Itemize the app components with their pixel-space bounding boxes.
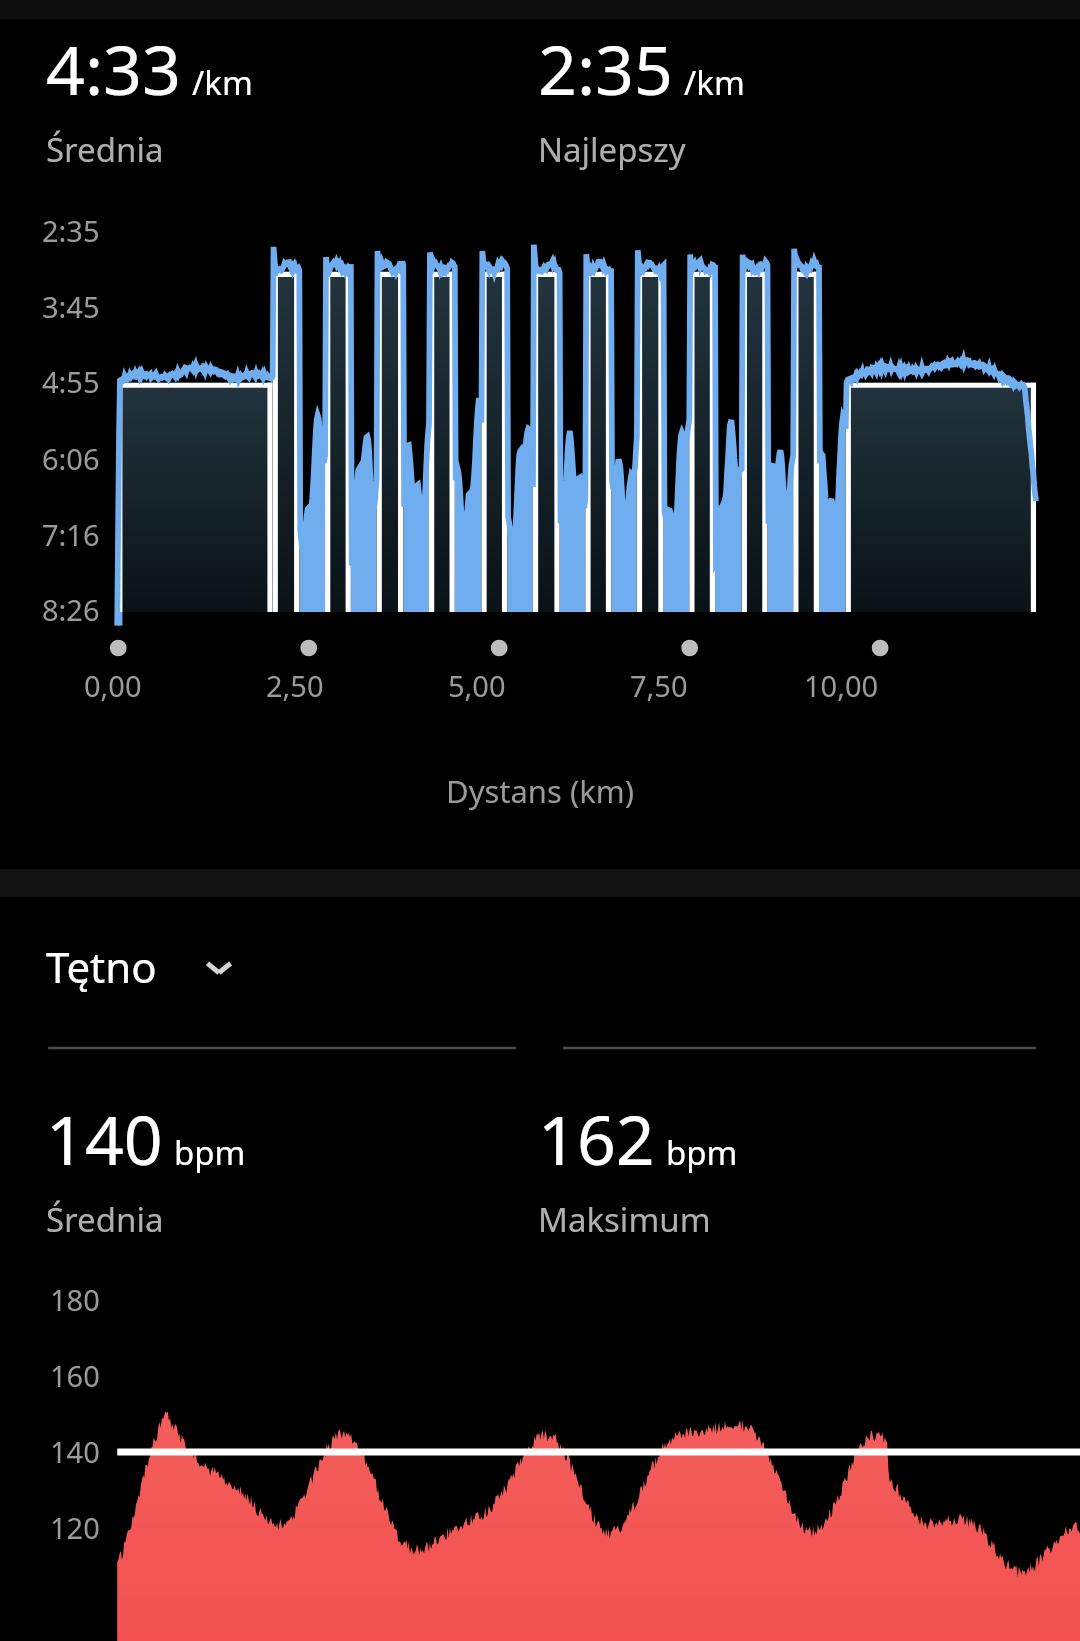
staticText: 5,00 [448, 666, 506, 705]
staticText: 6:06 [42, 439, 100, 478]
staticText: 8:26 [42, 590, 100, 629]
staticText: 4:33 [46, 22, 181, 115]
button[interactable]: Tętno [46, 938, 253, 1001]
staticText: 7,50 [630, 666, 688, 705]
staticText: 140 [50, 1432, 100, 1471]
staticText: 160 [50, 1356, 100, 1395]
staticText: 140 [46, 1092, 163, 1185]
staticText: Najlepszy [538, 127, 686, 172]
staticText: bpm [666, 1130, 738, 1175]
staticText: 2,50 [266, 666, 324, 705]
staticText: 2:35 [538, 22, 673, 115]
staticText: 180 [50, 1280, 100, 1319]
staticText: 162 [538, 1092, 655, 1185]
staticText: bpm [174, 1130, 246, 1175]
staticText: Średnia [46, 1197, 164, 1242]
staticText: 0,00 [84, 666, 142, 705]
staticText: Tętno [46, 938, 157, 995]
staticText: Maksimum [538, 1197, 711, 1242]
staticText: Dystans (km) [446, 770, 635, 812]
staticText: 7:16 [42, 515, 100, 554]
staticText: /km [192, 60, 253, 105]
other: Rozwiń tętno [201, 949, 237, 985]
staticText: 4:55 [42, 362, 100, 401]
staticText: /km [684, 60, 745, 105]
staticText: 2:35 [42, 211, 100, 250]
staticText: Średnia [46, 127, 164, 172]
staticText: 3:45 [42, 287, 100, 326]
staticText: 120 [50, 1508, 100, 1547]
staticText: 10,00 [804, 666, 879, 705]
